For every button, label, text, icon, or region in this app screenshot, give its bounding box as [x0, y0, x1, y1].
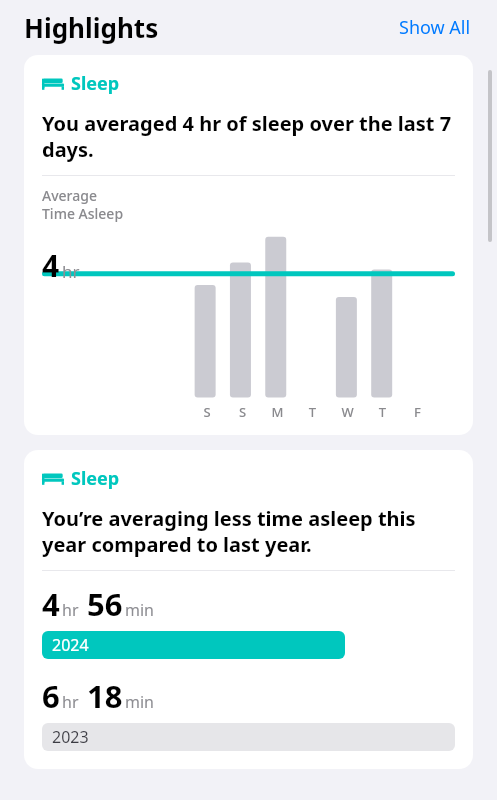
staticText: S: [189, 403, 225, 421]
button[interactable]: Sleep: [24, 55, 473, 435]
button[interactable]: Show All: [397, 13, 473, 42]
staticText: Average Time Asleep: [42, 186, 124, 223]
staticText: min: [125, 691, 154, 713]
staticText: W: [330, 403, 365, 421]
staticText: 4: [42, 245, 60, 286]
staticText: You averaged 4 hr of sleep over the last…: [42, 110, 455, 163]
staticText: 56: [87, 583, 123, 625]
staticText: 6: [42, 675, 60, 717]
staticText: 4: [42, 583, 60, 625]
staticText: min: [125, 599, 154, 621]
staticText: T: [295, 403, 330, 421]
staticText: M: [260, 403, 295, 421]
staticText: Sleep: [71, 466, 120, 491]
staticText: 2024: [52, 634, 89, 656]
staticText: You’re averaging less time asleep this y…: [42, 505, 455, 558]
staticText: hr: [62, 260, 80, 283]
staticText: F: [400, 403, 435, 421]
staticText: Show All: [399, 15, 471, 40]
staticText: hr: [62, 599, 79, 621]
staticText: 2023: [52, 726, 89, 748]
staticText: T: [365, 403, 400, 421]
staticText: hr: [62, 691, 79, 713]
button[interactable]: Sleep: [24, 450, 473, 769]
staticText: 18: [87, 675, 123, 717]
staticText: Highlights: [24, 10, 159, 45]
staticText: Sleep: [71, 71, 120, 96]
staticText: S: [225, 403, 260, 421]
